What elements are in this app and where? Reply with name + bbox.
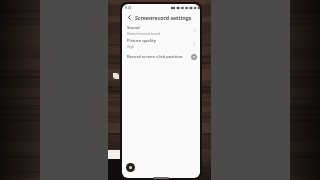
button[interactable]: Record screen click position toggle bbox=[191, 54, 197, 60]
button[interactable]: Sound bbox=[122, 24, 200, 37]
staticText: 8:43 bbox=[125, 6, 132, 10]
button[interactable]: Picture quality bbox=[122, 37, 200, 50]
staticText: High bbox=[127, 45, 135, 49]
button[interactable]: Back bbox=[124, 12, 135, 23]
staticText: Sound bbox=[127, 25, 140, 31]
staticText: Record screen click position bbox=[127, 54, 191, 60]
button[interactable]: Record bbox=[126, 163, 135, 172]
staticText: Screenrecord settings bbox=[135, 14, 192, 21]
staticText: Record internal sound bbox=[127, 32, 161, 36]
button[interactable]: Record screen click position bbox=[122, 50, 200, 64]
staticText: Picture quality bbox=[127, 38, 156, 44]
